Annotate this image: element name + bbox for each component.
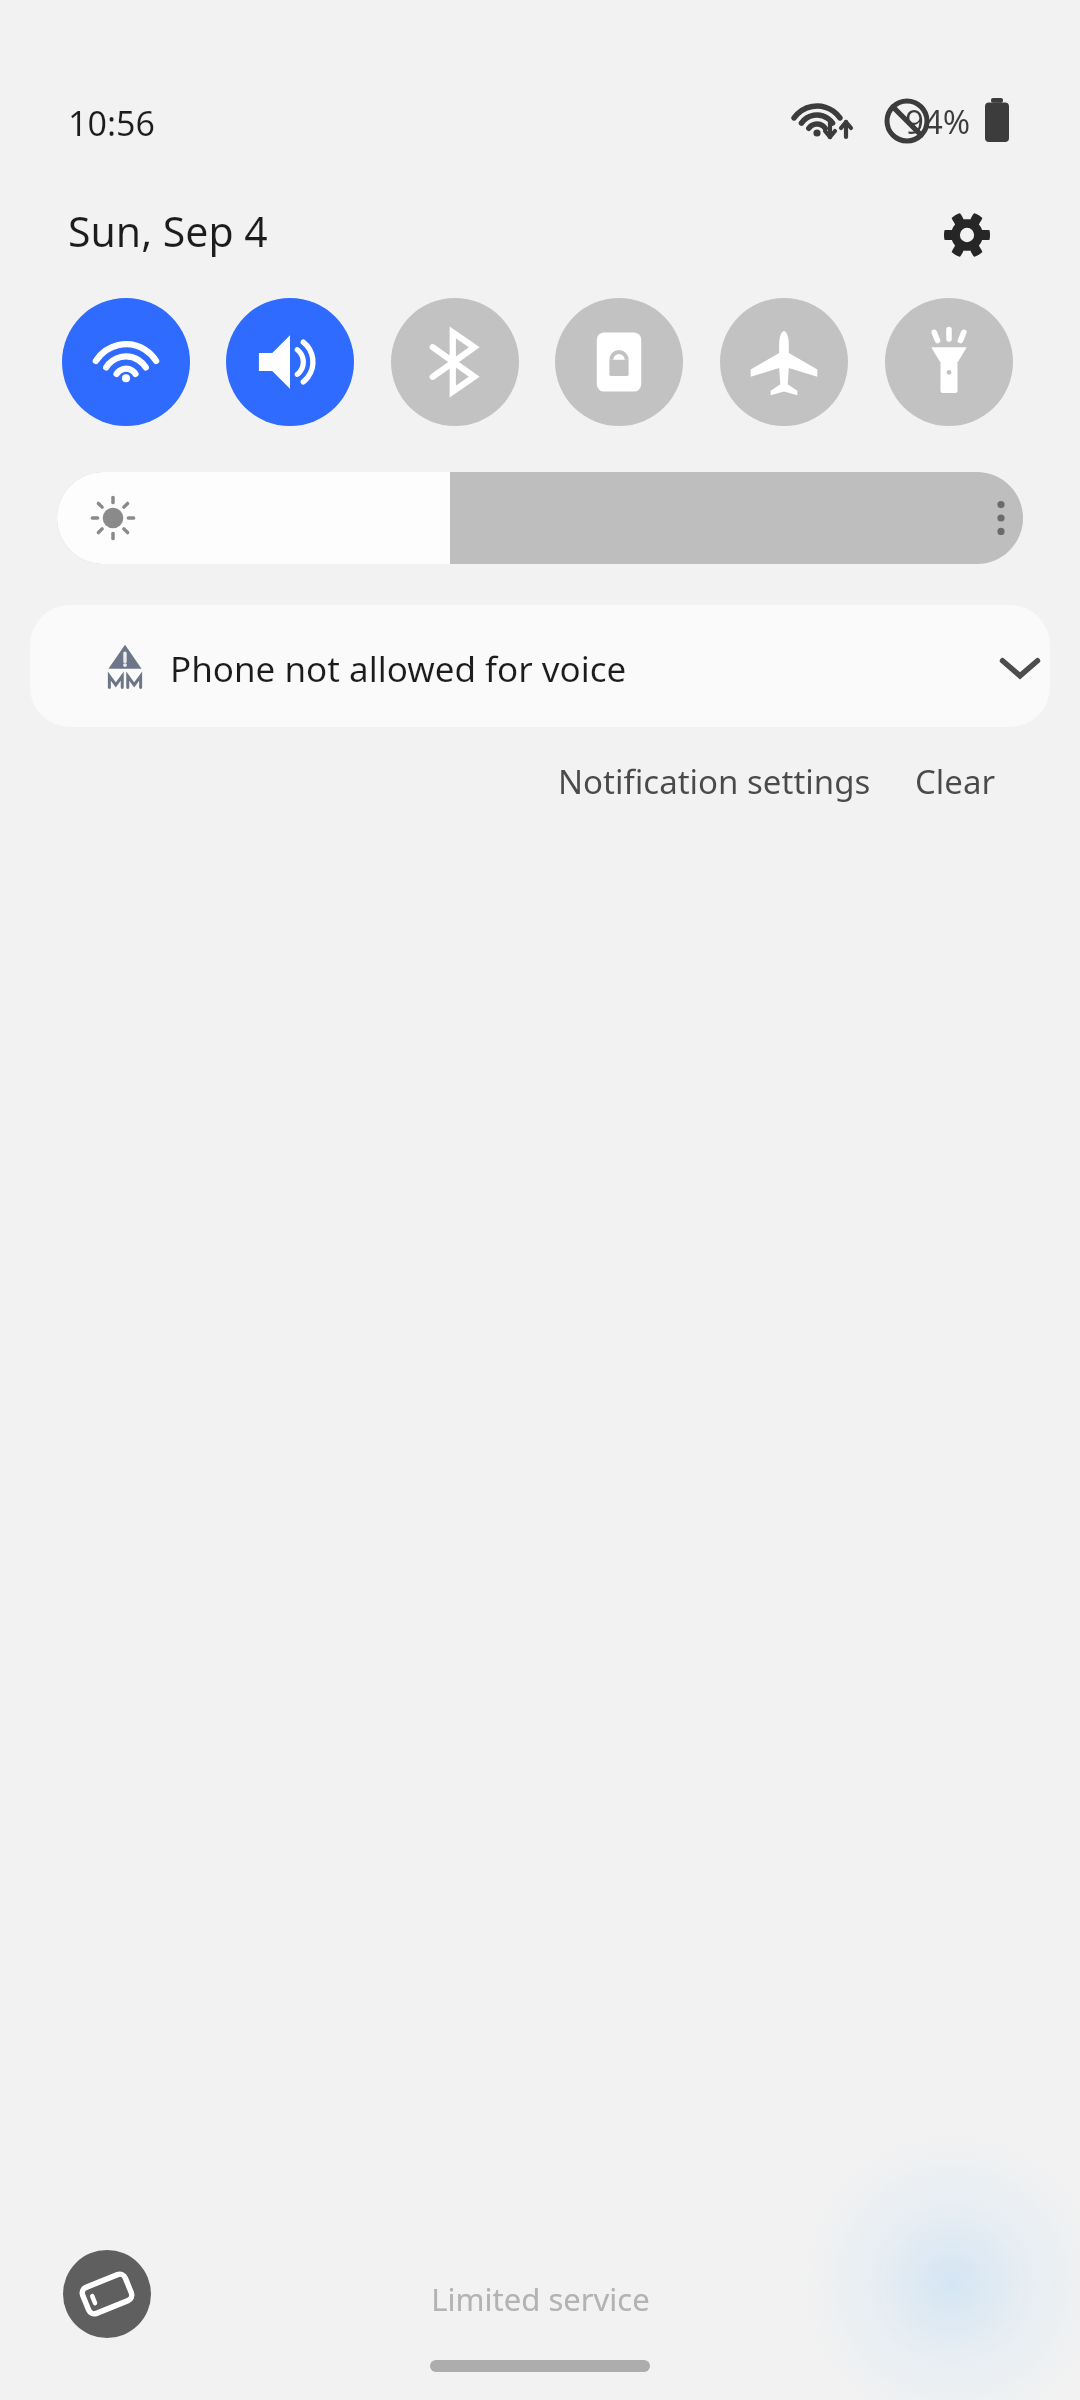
button[interactable]: Flashlight — [885, 298, 1013, 426]
button[interactable]: Rotate screen — [63, 2250, 151, 2338]
button[interactable]: Wi-Fi — [62, 298, 190, 426]
staticText: Notification settings — [558, 759, 871, 804]
staticText: 10:56 — [68, 100, 155, 146]
button[interactable]: Settings — [925, 195, 1009, 275]
button[interactable]: Phone not allowed for voice — [30, 605, 1050, 727]
button[interactable]: Sound — [226, 298, 354, 426]
button[interactable]: Brightness — [57, 472, 1023, 564]
button[interactable]: Clear — [905, 748, 1006, 814]
button[interactable]: Auto rotate — [555, 298, 683, 426]
staticText: Phone not allowed for voice — [170, 645, 627, 693]
button[interactable]: Airplane mode — [720, 298, 848, 426]
button[interactable]: Notification settings — [548, 748, 881, 814]
staticText: Clear — [915, 759, 996, 804]
staticText: Limited service — [431, 2278, 650, 2320]
button[interactable]: Bluetooth — [391, 298, 519, 426]
staticText: Sun, Sep 4 — [68, 203, 268, 259]
staticText: 94% — [905, 99, 971, 144]
